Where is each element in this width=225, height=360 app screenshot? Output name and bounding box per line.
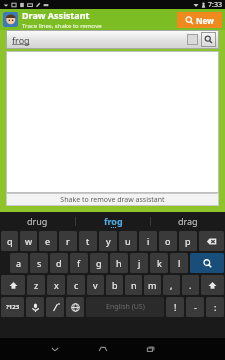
button[interactable]: Back <box>39 338 71 360</box>
button[interactable]: g <box>90 253 108 273</box>
button[interactable]: Shift <box>1 275 25 295</box>
staticText: z <box>34 279 39 291</box>
staticText: x <box>54 279 59 291</box>
staticText: r <box>66 235 70 247</box>
button[interactable]: drag <box>151 212 225 230</box>
staticText: , <box>170 279 173 291</box>
staticText: l <box>178 257 181 269</box>
button[interactable]: Shift <box>201 275 224 295</box>
staticText: ?123 <box>6 303 20 311</box>
staticText: e <box>45 235 51 247</box>
button[interactable]: Clear <box>187 34 198 45</box>
button[interactable]: y <box>99 231 117 251</box>
button[interactable]: Search <box>190 253 224 273</box>
staticText: y <box>106 235 111 247</box>
staticText: : <box>214 301 217 313</box>
staticText: f <box>77 257 81 269</box>
button[interactable]: frog <box>12 30 187 49</box>
button[interactable]: d <box>50 253 68 273</box>
staticText: q <box>7 235 13 247</box>
button[interactable]: Backspace <box>199 231 224 251</box>
button[interactable]: k <box>150 253 168 273</box>
button[interactable]: ?123 <box>1 297 24 317</box>
staticText: k <box>157 257 162 269</box>
staticText: m <box>148 279 157 291</box>
staticText: Draw Assistant <box>22 9 90 21</box>
staticText: c <box>74 279 79 291</box>
staticText: drug <box>27 215 48 227</box>
button[interactable]: c <box>67 275 85 295</box>
button[interactable]: f <box>70 253 88 273</box>
staticText: frog <box>104 215 123 227</box>
staticText: o <box>165 235 171 247</box>
button[interactable]: m <box>144 275 161 295</box>
button[interactable]: Shake to remove draw assistant <box>6 193 219 206</box>
button[interactable]: ! <box>166 297 184 317</box>
button[interactable]: b <box>106 275 123 295</box>
staticText: ! <box>174 301 177 313</box>
staticText: w <box>25 235 33 247</box>
button[interactable]: s <box>30 253 48 273</box>
button[interactable]: frog <box>76 212 150 230</box>
button[interactable]: Voice input <box>26 297 44 317</box>
button[interactable]: h <box>110 253 128 273</box>
button[interactable]: . <box>182 275 199 295</box>
staticText: i <box>147 235 150 247</box>
button[interactable]: Change language <box>66 297 84 317</box>
button[interactable]: : <box>206 297 224 317</box>
button[interactable]: z <box>27 275 45 295</box>
button[interactable]: r <box>59 231 77 251</box>
staticText: 7:33 <box>208 0 222 9</box>
staticText: n <box>131 279 137 291</box>
button[interactable]: a <box>10 253 28 273</box>
staticText: u <box>125 235 131 247</box>
button[interactable]: v <box>87 275 104 295</box>
staticText: d <box>56 257 62 269</box>
button[interactable]: , <box>163 275 180 295</box>
button[interactable]: n <box>125 275 142 295</box>
staticText: t <box>86 235 90 247</box>
button[interactable]: t <box>79 231 97 251</box>
button[interactable]: l <box>170 253 188 273</box>
button[interactable]: i <box>139 231 157 251</box>
staticText: v <box>93 279 98 291</box>
staticText: a <box>16 257 22 269</box>
staticText: . <box>189 279 192 291</box>
button[interactable]: o <box>159 231 177 251</box>
staticText: Trace lines, shake to remove <box>22 22 102 30</box>
button[interactable]: x <box>47 275 65 295</box>
staticText: English (US) <box>106 302 145 312</box>
button[interactable]: English (US) <box>86 297 164 317</box>
button[interactable]: p <box>179 231 197 251</box>
staticText: h <box>116 257 122 269</box>
button[interactable]: drug <box>0 212 75 230</box>
button[interactable]: New <box>177 12 222 28</box>
button[interactable]: Recent apps <box>135 338 167 360</box>
button[interactable]: Slash <box>46 297 64 317</box>
staticText: Shake to remove draw assistant <box>60 195 165 205</box>
button[interactable]: Search <box>201 32 216 47</box>
staticText: drag <box>178 215 198 227</box>
button[interactable]: e <box>39 231 57 251</box>
button[interactable]: Home <box>87 338 119 360</box>
button[interactable]: - <box>186 297 204 317</box>
staticText: b <box>112 279 118 291</box>
staticText: j <box>138 257 141 269</box>
button[interactable]: Draw Assistant icon <box>3 12 18 27</box>
staticText: s <box>37 257 42 269</box>
button[interactable]: u <box>119 231 137 251</box>
staticText: g <box>96 257 102 269</box>
staticText: - <box>194 301 197 313</box>
button[interactable]: q <box>1 231 18 251</box>
button[interactable]: j <box>130 253 148 273</box>
staticText: frog <box>12 34 30 46</box>
staticText: p <box>185 235 191 247</box>
staticText: New <box>196 15 214 26</box>
button[interactable]: w <box>20 231 37 251</box>
